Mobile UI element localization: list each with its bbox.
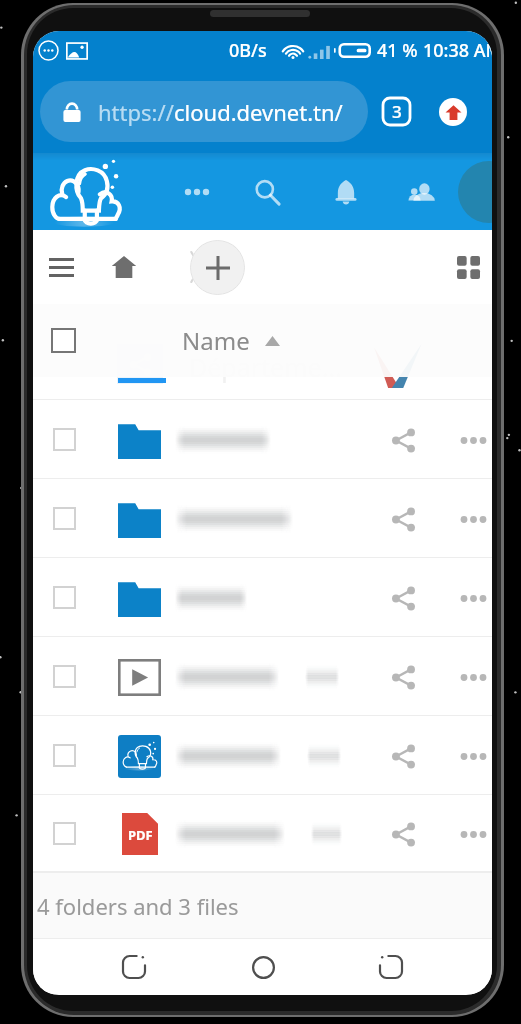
button[interactable]: DevNet Cloud home: [48, 160, 122, 228]
button[interactable]: Add: [190, 240, 245, 295]
button[interactable]: Notifications: [322, 168, 370, 216]
staticText: 0B/s: [229, 38, 267, 63]
button[interactable]: Share: [33, 400, 492, 479]
button[interactable]: Tabs: [379, 94, 414, 129]
button[interactable]: More options: [451, 812, 492, 856]
button[interactable]: Share: [33, 716, 492, 795]
button[interactable]: PDF: [33, 795, 492, 872]
button[interactable]: Contacts: [397, 168, 445, 216]
button[interactable]: Recent apps: [111, 944, 157, 990]
button[interactable]: Share: [380, 417, 426, 463]
staticText: 10:38 AM: [423, 38, 492, 63]
button[interactable]: Home folder: [104, 247, 144, 287]
button[interactable]: Share: [380, 496, 426, 542]
button[interactable]: Share: [380, 654, 426, 700]
button[interactable]: Share: [380, 811, 426, 857]
button[interactable]: More: [173, 164, 221, 220]
button[interactable]: Name: [182, 324, 280, 357]
button[interactable]: Grid view: [446, 245, 490, 289]
button[interactable]: More options: [451, 655, 492, 699]
staticText: Name: [182, 324, 250, 357]
button[interactable]: Search: [243, 168, 291, 216]
button[interactable]: https://: [40, 81, 368, 142]
button[interactable]: Share: [33, 558, 492, 637]
staticText: 3: [392, 100, 402, 123]
button[interactable]: Home: [240, 944, 286, 990]
button[interactable]: Share: [380, 575, 426, 621]
button[interactable]: More options: [451, 418, 492, 462]
button[interactable]: Back: [368, 944, 414, 990]
staticText: https://: [98, 97, 174, 127]
button[interactable]: More options: [451, 734, 492, 778]
button[interactable]: Select all: [51, 328, 76, 353]
button[interactable]: More options: [451, 497, 492, 541]
staticText: PDF: [128, 826, 153, 844]
staticText: 4 folders and 3 files: [37, 891, 239, 921]
button[interactable]: More options: [451, 576, 492, 620]
button[interactable]: Account: [458, 161, 492, 223]
button[interactable]: Menu: [41, 247, 81, 287]
staticText: 41 %: [377, 38, 418, 63]
staticText: cloud.devnet.tn/: [174, 97, 343, 127]
button[interactable]: Update: [439, 98, 467, 126]
button[interactable]: Share: [33, 479, 492, 558]
button[interactable]: Share: [33, 637, 492, 716]
button[interactable]: Share: [380, 733, 426, 779]
